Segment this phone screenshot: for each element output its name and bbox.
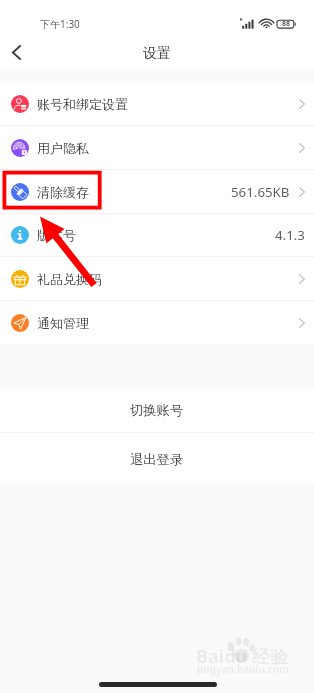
button[interactable]: 礼品兑换码 xyxy=(0,257,314,300)
staticText: 切换账号 xyxy=(130,402,184,419)
button[interactable]: 清除缓存 xyxy=(0,170,314,213)
staticText: 通知管理 xyxy=(37,315,89,331)
button[interactable]: 版本号 xyxy=(0,214,314,256)
staticText: 版本号 xyxy=(37,227,76,243)
staticText: 用户隐私 xyxy=(37,140,89,156)
staticText: 账号和绑定设置 xyxy=(37,96,128,112)
button[interactable]: Back xyxy=(2,38,30,66)
staticText: 设置 xyxy=(143,45,171,63)
staticText: Baidu 经验 xyxy=(196,644,288,669)
button[interactable]: 退出登录 xyxy=(0,433,314,481)
staticText: jingyan.baidu.com xyxy=(197,662,289,676)
button[interactable]: 账号和绑定设置 xyxy=(0,83,314,125)
button[interactable]: 用户隐私 xyxy=(0,126,314,169)
staticText: 退出登录 xyxy=(130,451,184,468)
staticText: 清除缓存 xyxy=(37,184,89,200)
button[interactable]: 切换账号 xyxy=(0,388,314,432)
staticText: 561.65KB xyxy=(231,183,290,201)
button[interactable]: 通知管理 xyxy=(0,301,314,344)
staticText: 88 xyxy=(282,19,291,29)
staticText: 4.1.3 xyxy=(275,226,305,244)
staticText: 礼品兑换码 xyxy=(37,271,102,287)
staticText: 下午1:30 xyxy=(40,17,80,31)
